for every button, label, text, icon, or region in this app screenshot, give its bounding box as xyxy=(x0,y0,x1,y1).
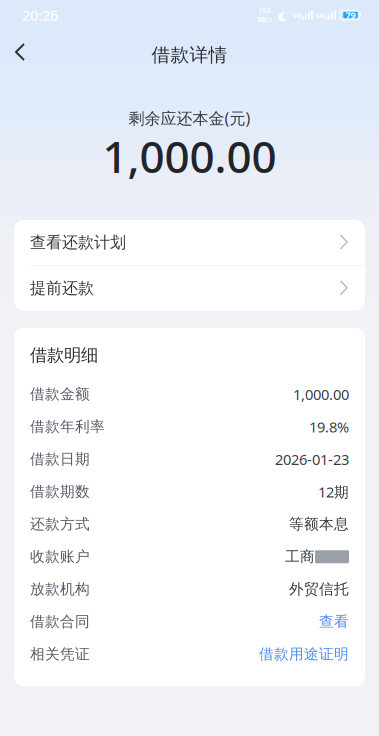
staticText: 5G xyxy=(292,11,301,20)
staticText: 借款详情 xyxy=(151,43,227,66)
staticText: KB/s xyxy=(257,15,271,24)
staticText: 剩余应还本金(元) xyxy=(128,107,250,129)
staticText: 79 xyxy=(345,9,355,21)
staticText: 外贸信托 xyxy=(289,580,349,598)
staticText: 借款日期 xyxy=(30,450,90,468)
staticText: 借款期数 xyxy=(30,483,90,501)
staticText: 1,000.00 xyxy=(293,384,349,404)
button[interactable]: Back xyxy=(0,30,40,74)
staticText: 5G xyxy=(316,11,325,20)
staticText: 借款合同 xyxy=(30,613,90,631)
staticText: 借款明细 xyxy=(30,345,98,366)
staticText: 查看还款计划 xyxy=(30,233,126,252)
staticText: 153 xyxy=(258,6,270,15)
staticText: 等额本息 xyxy=(289,515,349,533)
staticText: 放款机构 xyxy=(30,580,90,598)
staticText: 借款年利率 xyxy=(30,418,105,436)
button[interactable]: 提前还款 xyxy=(14,266,365,311)
staticText: 工商 xyxy=(285,548,315,566)
staticText: 提前还款 xyxy=(30,278,94,298)
staticText: 借款用途证明 xyxy=(259,645,349,663)
button[interactable]: 查看还款计划 xyxy=(14,220,365,265)
staticText: 借款金额 xyxy=(30,385,90,403)
staticText: 2026-01-23 xyxy=(275,449,349,469)
staticText: 收款账户 xyxy=(30,548,90,566)
button[interactable]: 借款用途证明 xyxy=(259,645,349,663)
staticText: 还款方式 xyxy=(30,515,90,533)
staticText: 19.8% xyxy=(309,417,349,436)
staticText: 1,000.00 xyxy=(102,127,276,185)
staticText: 20:26 xyxy=(22,5,58,25)
button[interactable]: 查看 xyxy=(319,613,349,631)
staticText: 相关凭证 xyxy=(30,645,90,663)
staticText: 12期 xyxy=(318,482,349,501)
staticText: 查看 xyxy=(319,613,349,631)
